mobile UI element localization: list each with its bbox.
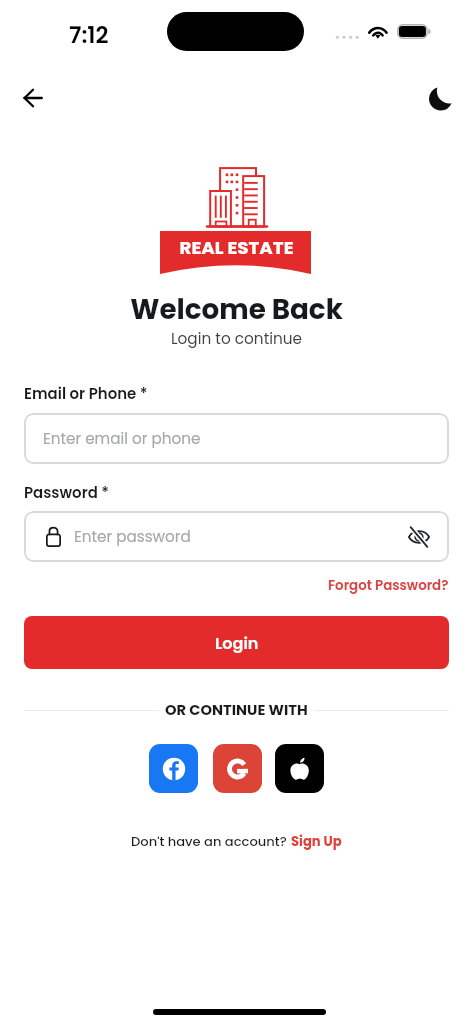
button[interactable]: Enter email or phone (24, 413, 449, 464)
button[interactable]: Sign in with Google (213, 744, 262, 793)
staticText: Welcome Back (0, 290, 473, 329)
staticText: Forgot Password? (328, 576, 449, 595)
button[interactable]: Dark mode (418, 76, 462, 120)
button[interactable]: Sign in with Facebook (149, 744, 198, 793)
staticText: Password * (24, 482, 110, 503)
button[interactable]: Login (24, 616, 449, 669)
staticText: Sign Up (291, 832, 342, 850)
button[interactable]: Sign in with Apple (275, 744, 324, 793)
button[interactable]: Forgot Password? (328, 576, 449, 595)
button[interactable]: Enter password (24, 511, 449, 562)
staticText: Enter password (74, 526, 408, 547)
staticText: Don't have an account? (131, 832, 291, 850)
staticText: Enter email or phone (43, 428, 430, 449)
staticText: OR CONTINUE WITH (165, 700, 308, 721)
staticText: 7:12 (69, 19, 109, 51)
staticText: Email or Phone * (24, 383, 148, 404)
staticText: Login to continue (0, 328, 473, 349)
button[interactable]: Sign Up (291, 832, 342, 850)
staticText: REAL ESTATE (161, 235, 312, 261)
button[interactable]: Show password (408, 526, 430, 548)
staticText: Login (215, 632, 259, 654)
button[interactable]: Back (11, 76, 55, 120)
